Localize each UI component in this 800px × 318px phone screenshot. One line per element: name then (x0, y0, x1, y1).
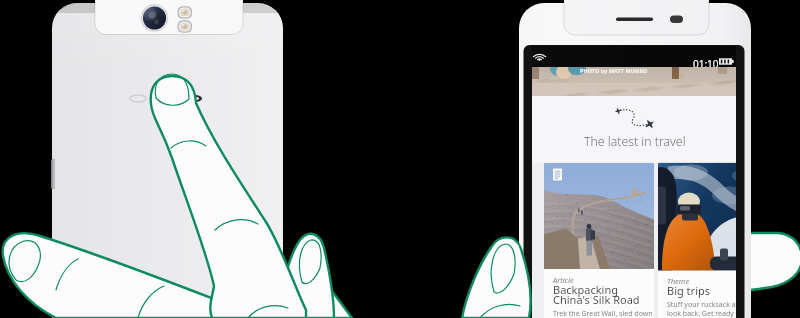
button[interactable] (0, 0, 800, 318)
